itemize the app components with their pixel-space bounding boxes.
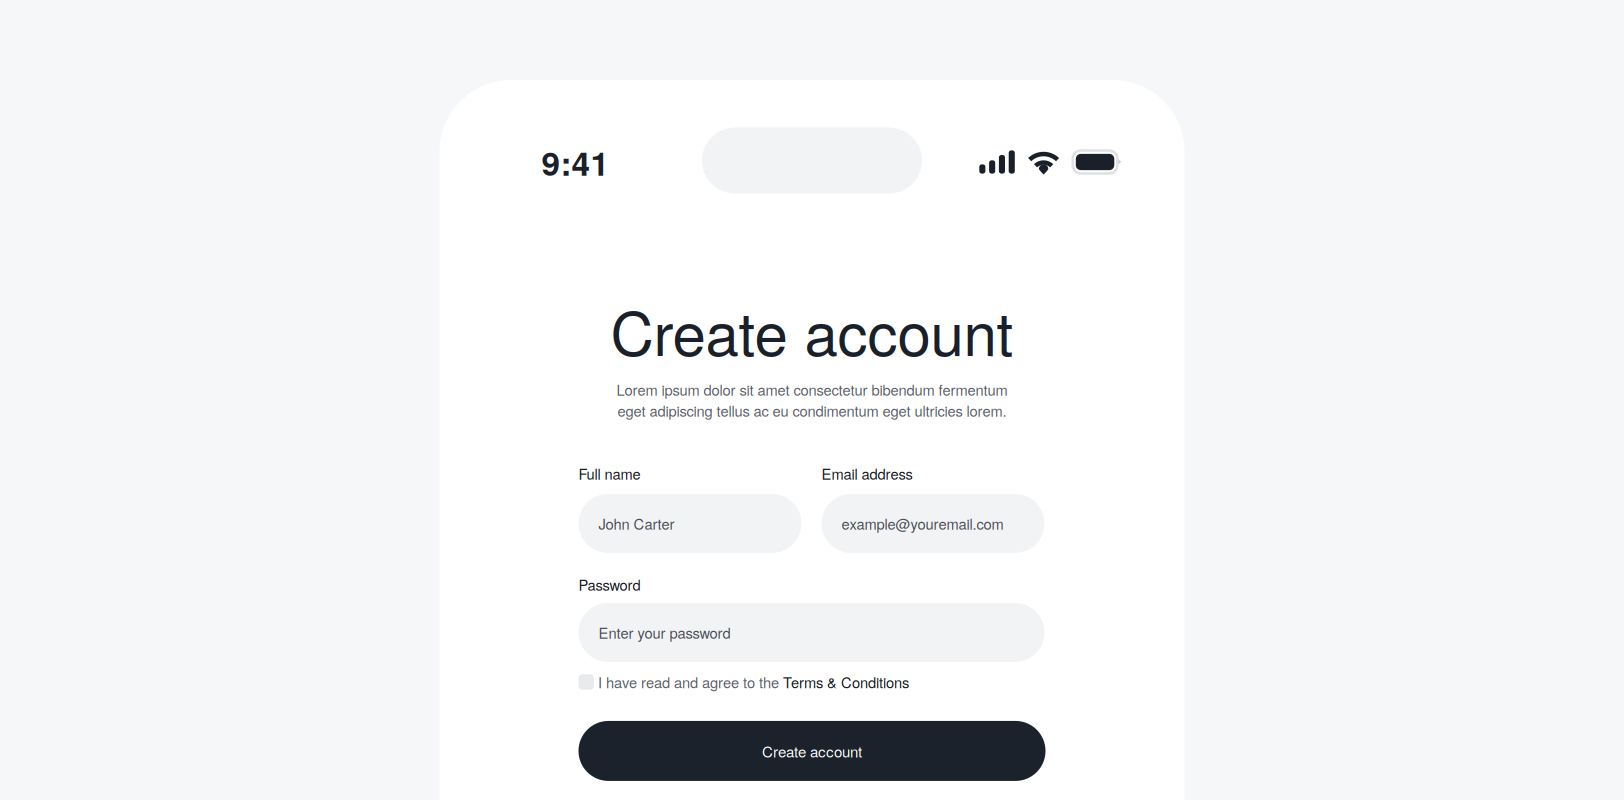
staticText: Lorem ipsum dolor sit amet consectetur b… (616, 379, 1007, 400)
staticText: I have read and agree to the (598, 671, 783, 692)
staticText: eget adipiscing tellus ac eu condimentum… (617, 400, 1006, 421)
button[interactable]: Password (578, 603, 1044, 662)
staticText: John Carter (598, 513, 674, 534)
staticText: Password (578, 574, 640, 595)
staticText: example@youremail.com (841, 513, 1003, 534)
staticText: 9:41 (541, 138, 609, 186)
staticText: Email address (821, 463, 912, 484)
staticText: Terms & Conditions (783, 671, 909, 692)
button[interactable]: Email address (821, 494, 1044, 553)
button[interactable]: I have read and agree to the (578, 672, 1044, 692)
button[interactable]: Full name (578, 494, 801, 553)
staticText: Create account (762, 740, 862, 762)
button[interactable]: Create account (578, 721, 1045, 781)
staticText: Create account (610, 287, 1013, 373)
staticText: Full name (578, 463, 640, 484)
staticText: Enter your password (598, 622, 730, 643)
